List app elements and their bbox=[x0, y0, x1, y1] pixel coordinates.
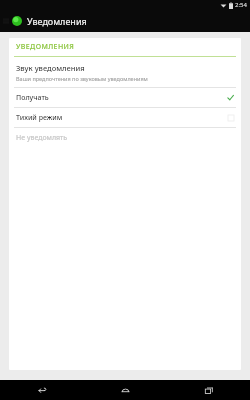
button[interactable]: Back bbox=[0, 380, 84, 400]
staticText: Не уведомлять bbox=[16, 133, 228, 143]
staticText: 2:54 bbox=[235, 1, 247, 9]
button[interactable]: Получать bbox=[9, 88, 241, 107]
button[interactable]: Home bbox=[84, 380, 167, 400]
button[interactable]: Тихий режим bbox=[9, 108, 241, 127]
staticText: Получать bbox=[16, 93, 227, 103]
button[interactable]: Recent apps bbox=[167, 380, 250, 400]
staticText: Уведомления bbox=[27, 15, 87, 27]
button[interactable]: Звук уведомления bbox=[9, 57, 241, 87]
staticText: УВЕДОМЛЕНИЯ bbox=[16, 42, 75, 52]
button[interactable]: Не уведомлять bbox=[9, 128, 241, 147]
staticText: Тихий режим bbox=[16, 113, 228, 123]
staticText: Звук уведомления bbox=[16, 63, 85, 73]
staticText: Ваши предпочтения по звуковым уведомлени… bbox=[16, 75, 148, 82]
button[interactable]: App icon bbox=[11, 15, 23, 27]
